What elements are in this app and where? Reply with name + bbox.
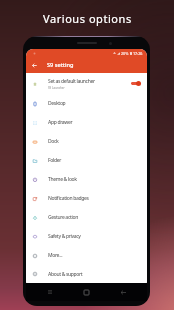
button[interactable]: Set as default launcher — [26, 73, 147, 94]
staticText: Gesture action — [48, 214, 79, 221]
staticText: Theme & look — [48, 176, 77, 183]
staticText: More... — [48, 252, 63, 259]
button[interactable]: Home — [80, 286, 92, 298]
staticText: Safety & privacy — [48, 233, 81, 240]
button[interactable]: Safety & privacy — [26, 227, 147, 246]
staticText: Various options — [43, 11, 132, 26]
button[interactable]: Desktop — [26, 94, 147, 113]
staticText: Dock — [48, 138, 59, 145]
staticText: 20% — [121, 51, 129, 56]
button[interactable]: Theme & look — [26, 170, 147, 189]
button[interactable]: Notification badges — [26, 189, 147, 208]
staticText: Set as default launcher — [48, 78, 95, 85]
staticText: About & support — [48, 271, 83, 278]
button[interactable]: Folder — [26, 151, 147, 170]
button[interactable]: More... — [26, 246, 147, 265]
button[interactable]: Gesture action — [26, 208, 147, 227]
staticText: S9 setting — [47, 61, 74, 69]
button[interactable]: Recent apps — [44, 286, 56, 298]
button[interactable]: Back — [26, 57, 43, 73]
staticText: App drawer — [48, 119, 73, 126]
button[interactable]: App drawer — [26, 113, 147, 132]
button[interactable]: Dock — [26, 132, 147, 151]
staticText: S9 Launcher — [48, 86, 65, 90]
staticText: Notification badges — [48, 195, 89, 202]
staticText: 17:26 — [133, 51, 143, 56]
staticText: Folder — [48, 157, 62, 164]
button[interactable]: Back — [117, 286, 129, 298]
button[interactable]: About & support — [26, 265, 147, 283]
staticText: Desktop — [48, 100, 66, 107]
